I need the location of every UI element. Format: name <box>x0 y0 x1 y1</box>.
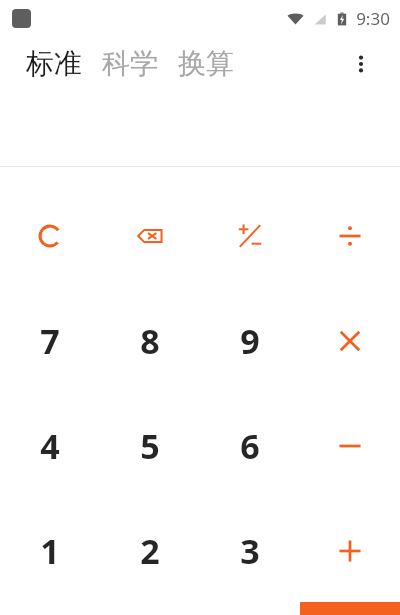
button[interactable]: 2 <box>100 498 200 603</box>
staticText: 3 <box>240 528 260 574</box>
staticText: 9:30 <box>356 7 390 30</box>
button[interactable]: Divide <box>300 183 400 288</box>
button[interactable]: 5 <box>100 393 200 498</box>
staticText: 科学 <box>102 46 158 81</box>
button[interactable]: Plus <box>300 498 400 603</box>
button[interactable]: Clear <box>0 183 100 288</box>
button[interactable]: 6 <box>200 393 300 498</box>
staticText: 8 <box>140 318 160 364</box>
button[interactable]: 4 <box>0 393 100 498</box>
button[interactable]: More options <box>344 47 378 81</box>
button[interactable]: 换算 <box>176 42 236 85</box>
staticText: 2 <box>140 528 160 574</box>
button[interactable]: 1 <box>0 498 100 603</box>
staticText: 7 <box>40 318 60 364</box>
staticText: 标准 <box>26 46 82 81</box>
button[interactable]: 3 <box>200 498 300 603</box>
staticText: 换算 <box>178 46 234 81</box>
button[interactable]: Plus minus <box>200 183 300 288</box>
button[interactable]: Backspace <box>100 183 200 288</box>
button[interactable]: Multiply <box>300 288 400 393</box>
staticText: 9 <box>240 318 260 364</box>
button[interactable]: 8 <box>100 288 200 393</box>
button[interactable]: 7 <box>0 288 100 393</box>
button[interactable]: 科学 <box>100 42 160 85</box>
staticText: 6 <box>240 423 260 469</box>
button[interactable]: 9 <box>200 288 300 393</box>
staticText: 4 <box>40 423 60 469</box>
button[interactable]: Minus <box>300 393 400 498</box>
button[interactable]: 标准 <box>24 42 84 85</box>
staticText: 1 <box>40 528 60 574</box>
staticText: 5 <box>140 423 160 469</box>
